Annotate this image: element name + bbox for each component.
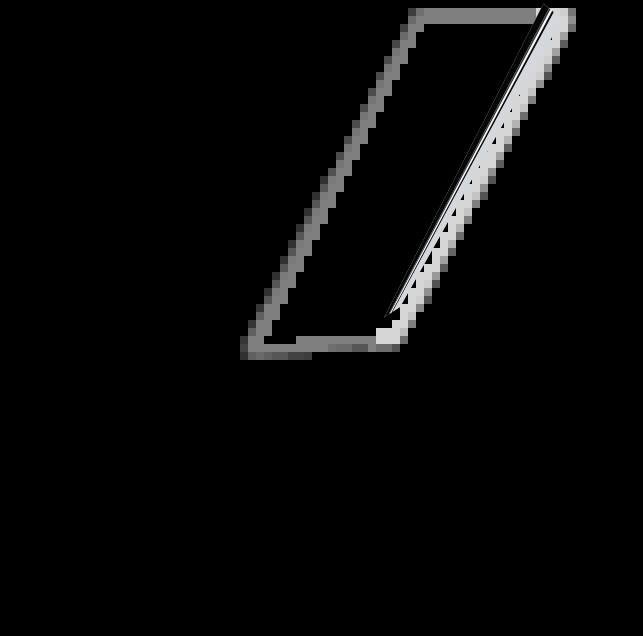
staticText: 三 — [258, 358, 265, 366]
staticText: 二 — [258, 350, 265, 358]
staticText: 二 — [258, 334, 265, 342]
staticText: 林 — [218, 330, 249, 366]
staticText: 〇 — [258, 342, 265, 350]
